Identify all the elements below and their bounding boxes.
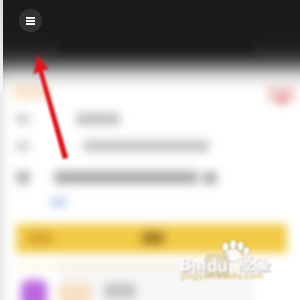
staticText: 经验 — [239, 256, 271, 276]
staticText: 经验 — [238, 255, 270, 275]
staticText: du — [208, 255, 229, 278]
staticText: Bai — [181, 253, 207, 278]
button[interactable]: Menu — [19, 9, 42, 32]
staticText: jingyan.baidu.com — [181, 269, 264, 281]
staticText: Bai — [180, 252, 206, 277]
staticText: du — [207, 254, 228, 277]
